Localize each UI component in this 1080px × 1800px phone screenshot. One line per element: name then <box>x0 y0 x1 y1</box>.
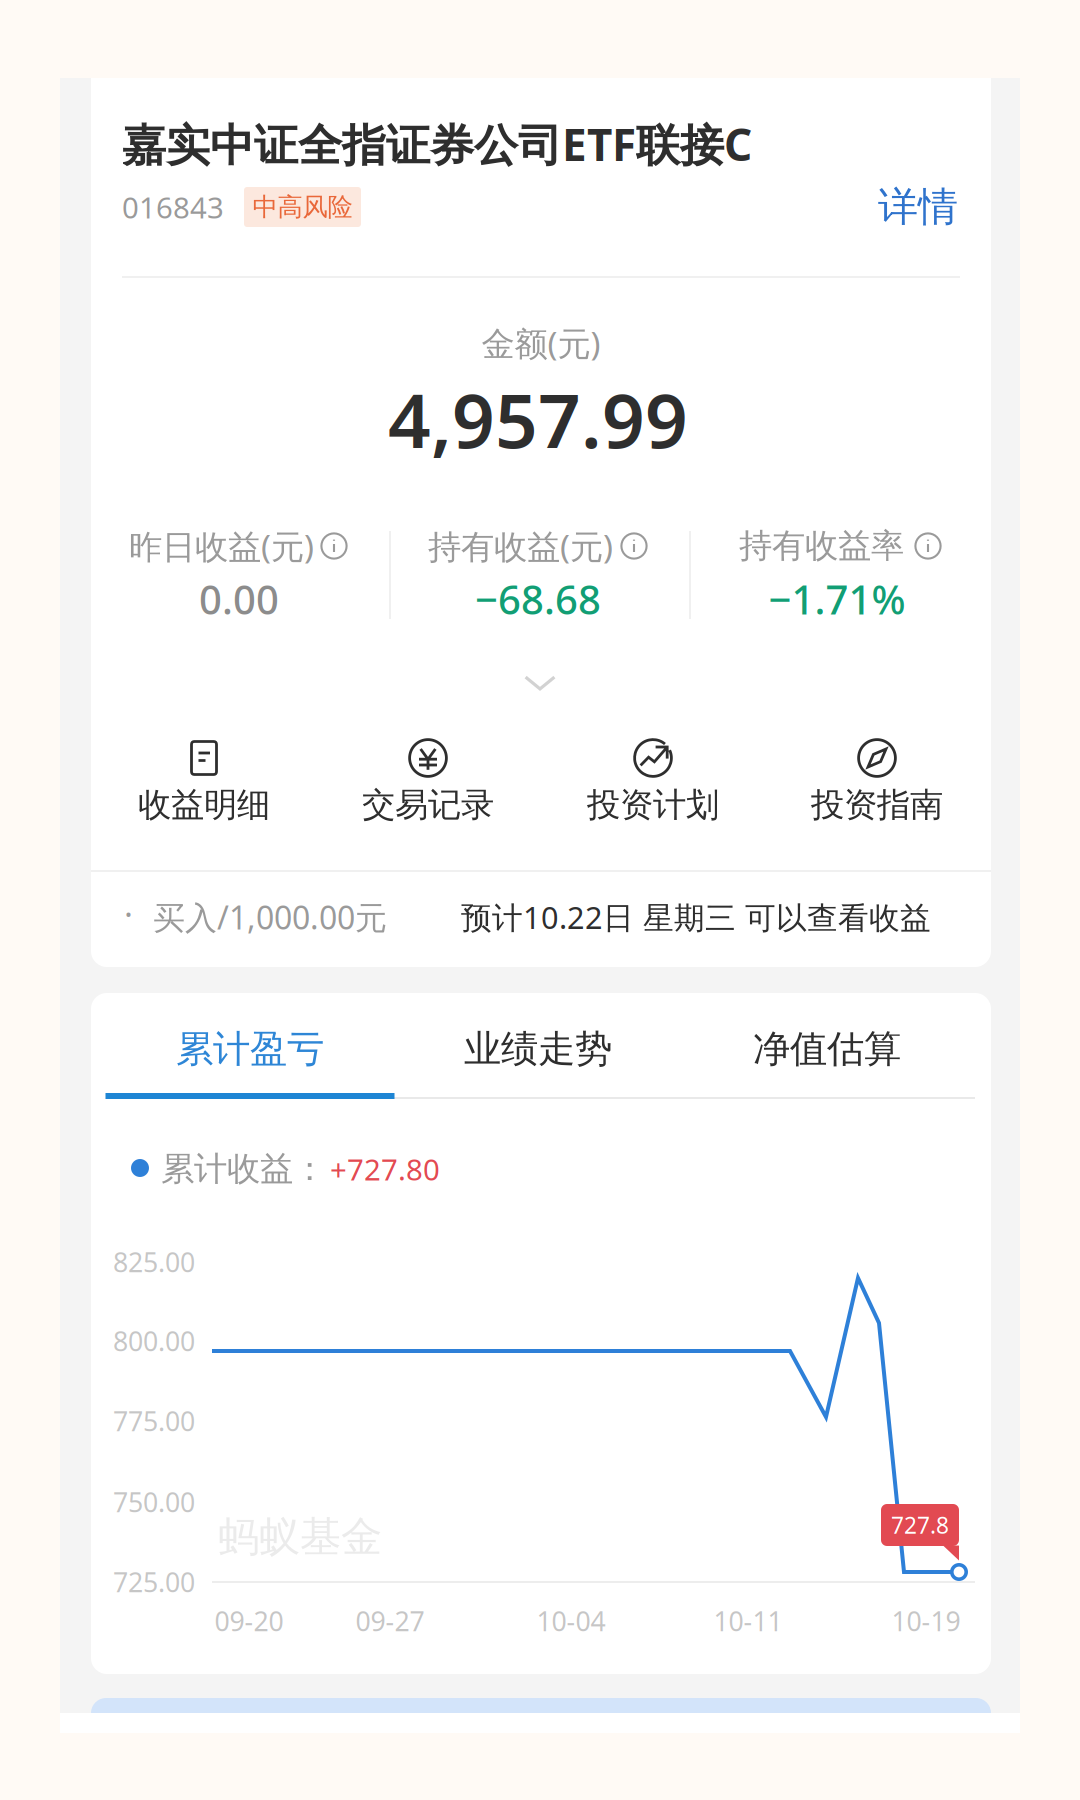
button[interactable]: 累计盈亏 <box>107 1009 393 1089</box>
staticText: 买入/1,000.00元 <box>153 896 387 938</box>
button[interactable]: 详情 <box>838 179 958 235</box>
staticText: 725.00 <box>113 1564 195 1600</box>
staticText: 825.00 <box>113 1244 195 1280</box>
staticText: 09-27 <box>355 1603 424 1639</box>
staticText: 昨日收益(元) <box>129 524 314 568</box>
button[interactable]: 业绩走势 <box>395 1009 681 1089</box>
staticText: 持有收益(元) <box>428 524 613 568</box>
staticText: 775.00 <box>113 1403 195 1439</box>
staticText: 0.00 <box>199 572 279 625</box>
staticText: 中高风险 <box>252 191 352 222</box>
button[interactable]: 收益明细 <box>99 731 309 841</box>
staticText: 10-11 <box>713 1603 782 1639</box>
staticText: 727.8 <box>891 1510 949 1540</box>
staticText: −68.68 <box>475 572 601 625</box>
staticText: 收益明细 <box>138 784 270 825</box>
staticText: 10-04 <box>536 1603 605 1639</box>
staticText: 金额(元) <box>481 321 600 365</box>
staticText: 嘉实中证全指证券公司ETF联接C <box>122 115 752 173</box>
staticText: 累计收益： <box>161 1148 326 1189</box>
staticText: 净值估算 <box>753 1026 901 1072</box>
staticText: 4,957.99 <box>388 369 688 469</box>
staticText: 蚂蚁基金 <box>218 1512 382 1562</box>
staticText: 详情 <box>878 182 958 231</box>
staticText: 016843 <box>122 187 224 226</box>
staticText: −1.71% <box>768 572 905 625</box>
staticText: 持有收益率 <box>739 525 904 566</box>
staticText: 交易记录 <box>362 784 494 825</box>
staticText: +727.80 <box>330 1149 440 1188</box>
button[interactable]: 投资指南 <box>772 731 982 841</box>
staticText: 800.00 <box>113 1323 195 1359</box>
staticText: 累计盈亏 <box>176 1026 324 1072</box>
button[interactable]: 交易记录 <box>323 731 533 841</box>
staticText: 投资指南 <box>811 784 943 825</box>
button[interactable]: 中高风险 <box>244 187 361 227</box>
staticText: 09-20 <box>214 1603 283 1639</box>
staticText: 750.00 <box>113 1484 195 1520</box>
staticText: 预计10.22日 星期三 可以查看收益 <box>461 897 931 937</box>
button[interactable]: 投资计划 <box>548 731 758 841</box>
button[interactable]: 净值估算 <box>684 1009 970 1089</box>
staticText: 业绩走势 <box>464 1026 612 1072</box>
staticText: 10-19 <box>891 1603 960 1639</box>
staticText: · <box>124 891 133 935</box>
staticText: 投资计划 <box>587 784 719 825</box>
